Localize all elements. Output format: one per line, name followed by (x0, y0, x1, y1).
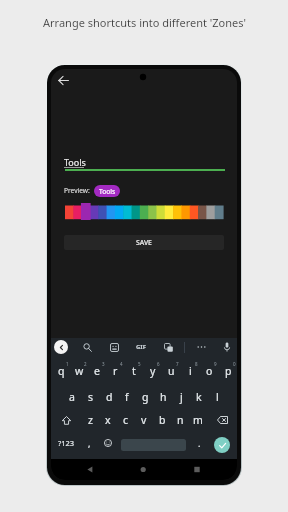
button[interactable]: GIF (134, 340, 148, 354)
button[interactable]: Stickers (107, 340, 121, 354)
staticText: h (160, 390, 167, 404)
button[interactable]: Enter (214, 437, 230, 453)
staticText: o (206, 364, 213, 378)
staticText: a (69, 390, 75, 404)
staticText: 0 (233, 361, 236, 367)
button[interactable] (65, 203, 223, 220)
staticText: f (125, 390, 129, 404)
staticText: c (123, 413, 129, 427)
staticText: n (177, 413, 184, 427)
staticText: 8 (195, 361, 198, 367)
button[interactable]: t (124, 360, 143, 382)
staticText: v (141, 413, 147, 427)
staticText: j (180, 390, 183, 404)
button[interactable]: q (52, 360, 70, 382)
button[interactable]: l (208, 386, 226, 408)
button[interactable]: , (81, 432, 97, 454)
staticText: Tools (99, 187, 116, 196)
staticText: p (225, 364, 232, 378)
button[interactable]: h (154, 386, 172, 408)
staticText: Arrange shortcuts into different 'Zones' (43, 15, 246, 30)
button[interactable]: Back (52, 69, 74, 91)
staticText: b (159, 413, 166, 427)
button[interactable]: d (100, 386, 118, 408)
staticText: x (105, 413, 111, 427)
staticText: i (189, 364, 192, 378)
staticText: u (168, 364, 175, 378)
button[interactable]: g (136, 386, 154, 408)
staticText: . (198, 437, 201, 449)
button[interactable]: e (88, 360, 106, 382)
staticText: 1 (66, 361, 69, 367)
staticText: l (216, 390, 219, 404)
staticText: 3 (102, 361, 105, 367)
staticText: d (106, 390, 113, 404)
staticText: q (58, 364, 65, 378)
staticText: 9 (214, 361, 217, 367)
button[interactable]: Voice input (220, 340, 234, 354)
button[interactable]: y (143, 360, 162, 382)
button[interactable]: b (153, 409, 171, 431)
button[interactable]: c (117, 409, 135, 431)
button[interactable]: . (191, 432, 207, 454)
button[interactable]: z (81, 409, 99, 431)
staticText: 5 (138, 361, 141, 367)
button[interactable]: a (62, 386, 81, 408)
button[interactable]: f (118, 386, 136, 408)
staticText: e (94, 364, 100, 378)
staticText: 6 (157, 361, 160, 367)
button[interactable]: w (70, 360, 88, 382)
button[interactable]: Tools (94, 185, 120, 197)
button[interactable]: Translate (161, 340, 175, 354)
button[interactable]: Emoji (100, 432, 116, 454)
button[interactable]: r (106, 360, 124, 382)
button[interactable]: x (99, 409, 117, 431)
button[interactable]: n (171, 409, 189, 431)
staticText: 4 (120, 361, 123, 367)
staticText: SAVE (136, 238, 152, 247)
button[interactable]: p (219, 360, 237, 382)
staticText: y (150, 364, 156, 378)
staticText: s (88, 390, 94, 404)
button[interactable]: m (189, 409, 207, 431)
staticText: Preview: (64, 186, 90, 195)
button[interactable]: Collapse toolbar (54, 340, 68, 354)
staticText: w (75, 364, 84, 378)
button[interactable]: i (181, 360, 200, 382)
button[interactable]: o (200, 360, 219, 382)
staticText: , (88, 437, 91, 449)
staticText: g (142, 390, 149, 404)
staticText: t (132, 364, 136, 378)
staticText: GIF (136, 343, 146, 351)
button[interactable]: Tools (64, 156, 86, 169)
staticText: 2 (84, 361, 87, 367)
button[interactable]: j (172, 386, 190, 408)
button[interactable]: Shift (51, 409, 81, 431)
staticText: k (196, 390, 202, 404)
button[interactable]: SAVE (64, 235, 224, 250)
button[interactable]: s (81, 386, 100, 408)
button[interactable]: Search (80, 340, 94, 354)
staticText: 7 (176, 361, 179, 367)
button[interactable]: Backspace (207, 409, 237, 431)
button[interactable]: ?123 (56, 432, 76, 454)
button[interactable]: More options (194, 340, 208, 354)
button[interactable]: u (162, 360, 181, 382)
staticText: ?123 (58, 438, 75, 448)
staticText: m (193, 413, 203, 427)
button[interactable]: k (190, 386, 208, 408)
staticText: Tools (64, 156, 86, 168)
staticText: r (113, 364, 118, 378)
button[interactable]: v (135, 409, 153, 431)
staticText: z (88, 413, 93, 427)
